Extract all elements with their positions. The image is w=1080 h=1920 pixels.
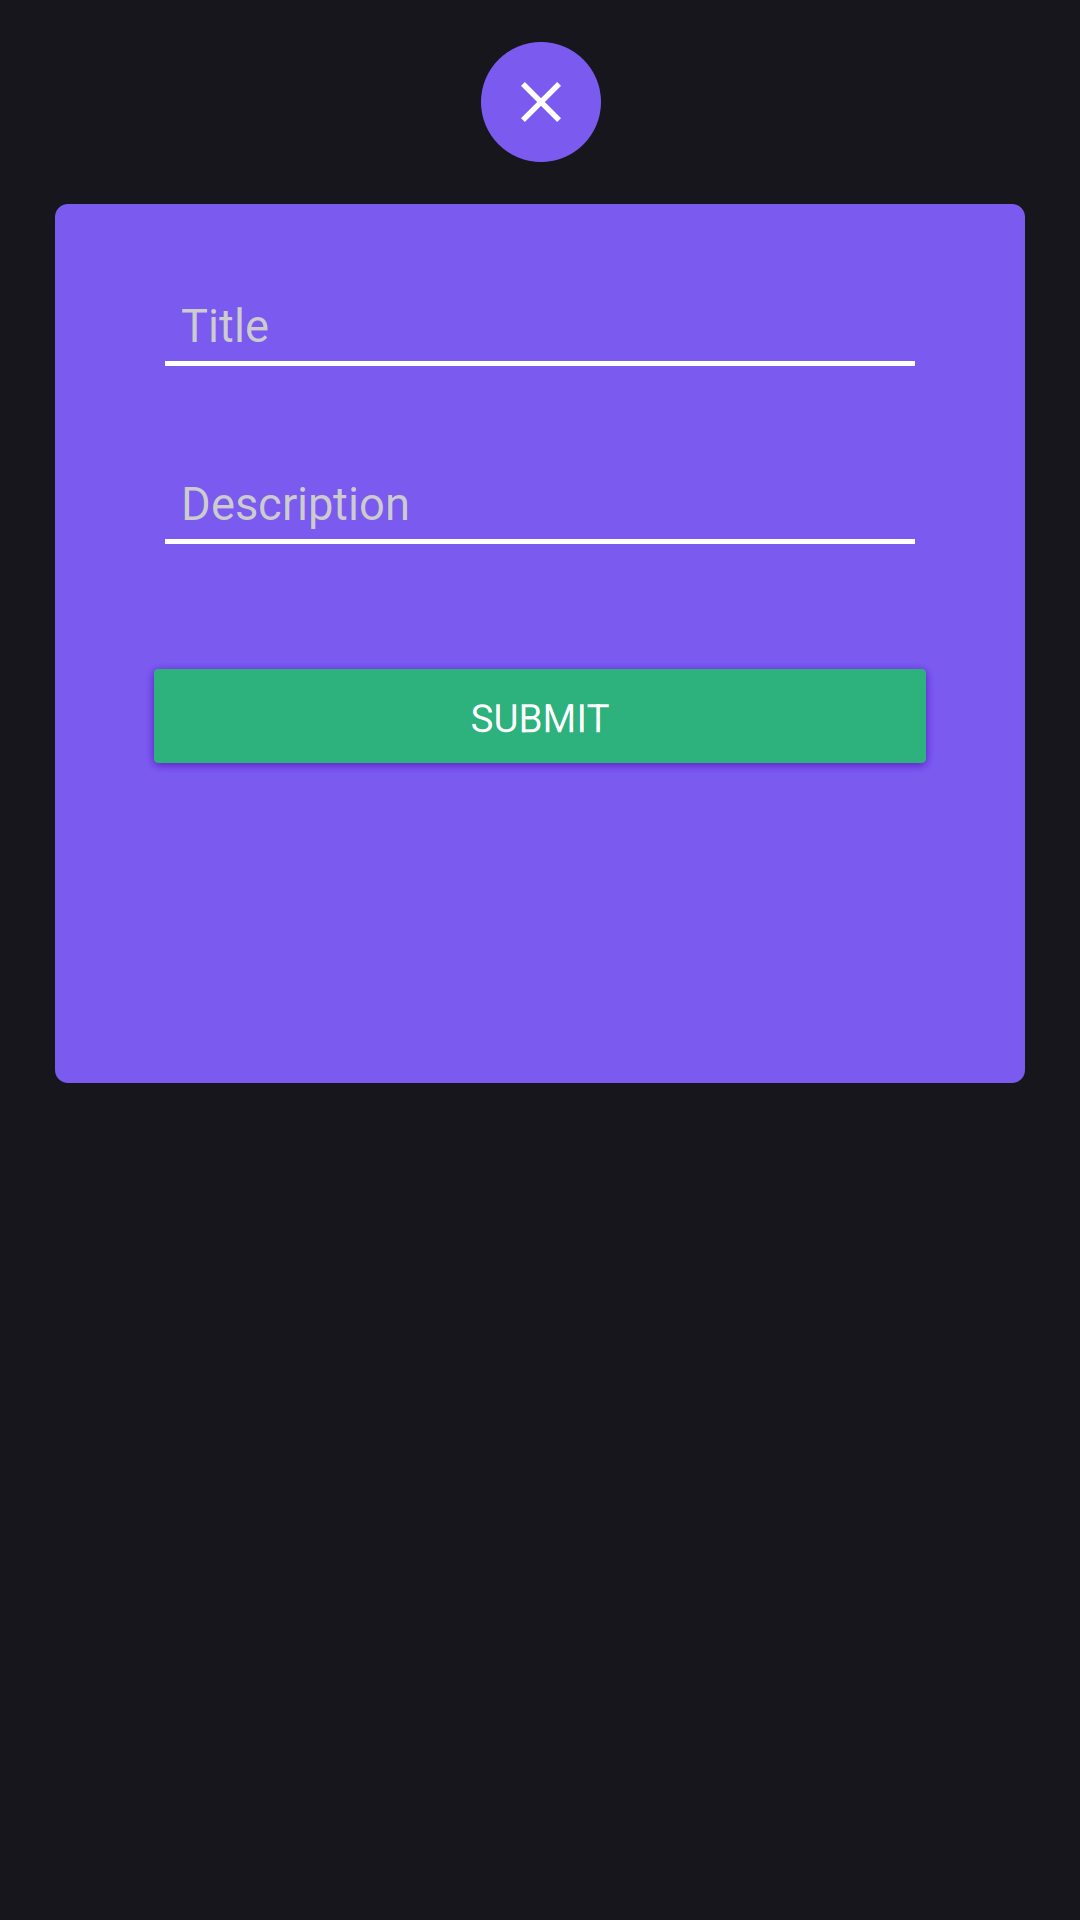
staticText: Description	[181, 478, 410, 531]
button[interactable]: SUBMIT	[154, 669, 926, 763]
button[interactable]: Description	[165, 485, 915, 544]
button[interactable]: Title	[165, 307, 915, 366]
staticText: SUBMIT	[470, 696, 609, 742]
staticText: Title	[181, 300, 269, 353]
button[interactable]: Close	[481, 42, 601, 162]
